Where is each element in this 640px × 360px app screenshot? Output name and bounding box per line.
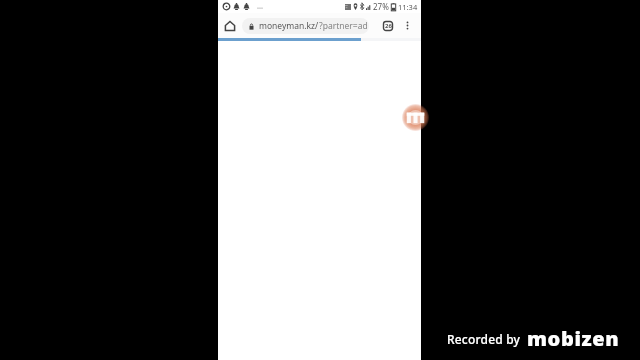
staticText: 27% xyxy=(373,1,389,12)
button[interactable]: More options xyxy=(399,13,415,38)
button[interactable]: Tabs xyxy=(378,13,398,38)
button[interactable]: Home xyxy=(220,13,240,38)
staticText: moneyman.kz/ xyxy=(259,20,319,32)
staticText: mobizen xyxy=(527,325,620,352)
staticText: ?partner=ad xyxy=(319,20,368,32)
staticText: 26 xyxy=(385,22,392,30)
staticText: Recorded by xyxy=(447,331,521,347)
button[interactable]: Search or type web address xyxy=(242,18,369,34)
staticText: 11:34 xyxy=(398,2,418,12)
